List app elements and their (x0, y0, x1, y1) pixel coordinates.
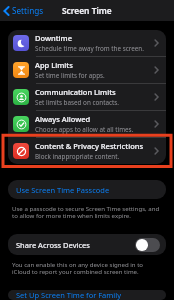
button[interactable]: Use Screen Time Passcode (8, 180, 166, 199)
staticText: Screen Time (62, 5, 112, 16)
staticText: Use Screen Time Passcode (16, 185, 110, 195)
other: Content & Privacy Restrictions (154, 147, 159, 155)
staticText: Schedule time away from the screen. (35, 44, 144, 53)
staticText: App Limits (35, 60, 73, 70)
staticText: Always Allowed (35, 114, 91, 124)
other: App Limits (154, 66, 159, 74)
staticText: Share Across Devices (16, 240, 90, 250)
button[interactable]: Communication Limits (8, 84, 166, 110)
staticText: Choose apps to allow at all times. (35, 125, 134, 134)
staticText: Set limits based on contacts. (35, 98, 119, 107)
button[interactable]: Set Up Screen Time for Family (8, 290, 166, 300)
button[interactable]: Back (0, 2, 50, 19)
staticText: Use a passcode to secure Screen Time set… (12, 204, 162, 220)
other: Downtime (154, 39, 159, 47)
staticText: Content & Privacy Restrictions (35, 141, 144, 151)
button[interactable]: Always Allowed (8, 111, 166, 137)
staticText: You can enable this on any device signed… (12, 260, 162, 276)
button[interactable]: Share Across Devices (8, 234, 166, 255)
staticText: Downtime (35, 33, 72, 43)
other: Communication Limits (154, 93, 159, 101)
button[interactable]: Content & Privacy Restrictions (8, 138, 166, 164)
other: Always Allowed (154, 120, 159, 128)
staticText: Communication Limits (35, 87, 116, 97)
other: Back (3, 6, 10, 16)
button[interactable]: Downtime (8, 30, 166, 56)
button[interactable]: App Limits (8, 57, 166, 83)
staticText: Settings (12, 5, 44, 16)
staticText: Set time limits for apps. (35, 71, 105, 80)
staticText: Set Up Screen Time for Family (16, 290, 122, 300)
staticText: Block inappropriate content. (35, 152, 120, 161)
